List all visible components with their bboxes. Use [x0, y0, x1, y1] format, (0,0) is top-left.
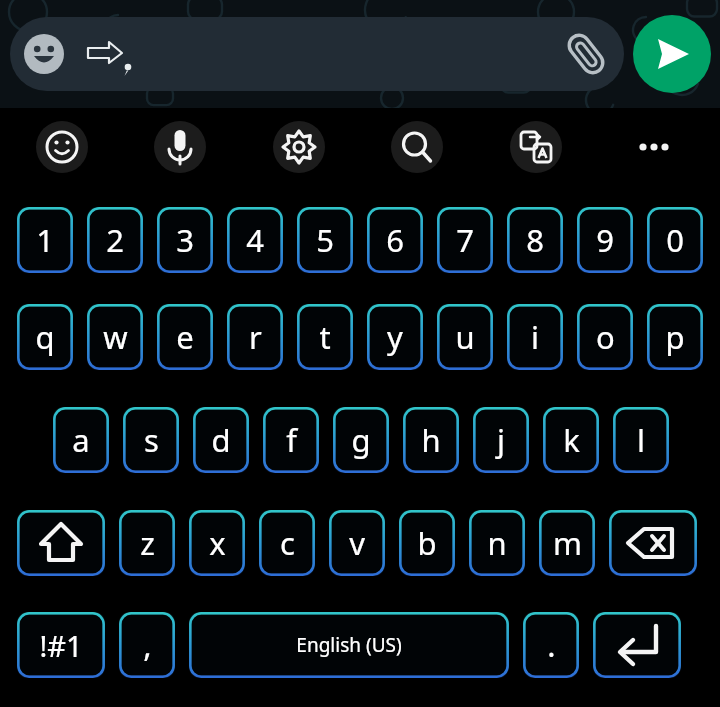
staticText: 7 — [456, 219, 474, 261]
staticText: 4 — [246, 219, 264, 261]
staticText: !#1 — [39, 626, 83, 665]
button[interactable]: Send — [633, 15, 711, 93]
button[interactable]: x — [189, 510, 245, 576]
staticText: e — [176, 316, 194, 358]
button[interactable]: Search — [391, 121, 443, 173]
staticText: English (US) — [296, 632, 402, 658]
button[interactable]: p — [647, 304, 703, 370]
staticText: c — [280, 522, 295, 564]
staticText: 9 — [596, 219, 614, 261]
staticText: 3 — [176, 219, 194, 261]
staticText: y — [387, 316, 403, 358]
staticText: z — [140, 522, 155, 564]
button[interactable]: 0 — [647, 207, 703, 273]
button[interactable]: m — [539, 510, 595, 576]
staticText: m — [553, 522, 582, 564]
button[interactable]: v — [329, 510, 385, 576]
button[interactable]: r — [227, 304, 283, 370]
staticText: v — [349, 522, 365, 564]
button[interactable]: Enter — [593, 612, 681, 678]
button[interactable]: 9 — [577, 207, 633, 273]
button[interactable]: More options — [628, 121, 680, 173]
staticText: n — [487, 522, 507, 564]
staticText: , — [143, 624, 152, 666]
button[interactable]: z — [119, 510, 175, 576]
button[interactable]: q — [17, 304, 73, 370]
button[interactable]: 2 — [87, 207, 143, 273]
button[interactable]: Attach — [562, 30, 610, 78]
staticText: l — [637, 419, 645, 461]
button[interactable]: i — [507, 304, 563, 370]
button[interactable]: 1 — [17, 207, 73, 273]
button[interactable]: g — [333, 407, 389, 473]
staticText: j — [497, 419, 505, 461]
button[interactable]: f — [263, 407, 319, 473]
button[interactable]: h — [403, 407, 459, 473]
staticText: x — [209, 522, 226, 564]
button[interactable]: s — [123, 407, 179, 473]
button[interactable]: e — [157, 304, 213, 370]
button[interactable]: k — [543, 407, 599, 473]
staticText: 0 — [666, 219, 684, 261]
button[interactable]: c — [259, 510, 315, 576]
button[interactable]: 7 — [437, 207, 493, 273]
staticText: h — [421, 419, 441, 461]
button[interactable]: 8 — [507, 207, 563, 273]
staticText: t — [319, 316, 331, 358]
button[interactable]: y — [367, 304, 423, 370]
button[interactable]: j — [473, 407, 529, 473]
button[interactable]: English (US) — [189, 612, 509, 678]
staticText: 5 — [316, 219, 334, 261]
button[interactable]: n — [469, 510, 525, 576]
staticText: p — [665, 316, 685, 358]
staticText: 1 — [36, 219, 54, 261]
staticText: a — [72, 419, 90, 461]
button[interactable]: l — [613, 407, 669, 473]
staticText: k — [563, 419, 580, 461]
button[interactable]: Translate — [510, 121, 562, 173]
button[interactable]: u — [437, 304, 493, 370]
button[interactable]: w — [87, 304, 143, 370]
staticText: r — [249, 316, 262, 358]
staticText: i — [531, 316, 539, 358]
staticText: 2 — [106, 219, 124, 261]
button[interactable]: b — [399, 510, 455, 576]
button[interactable]: , — [119, 612, 175, 678]
button[interactable]: a — [53, 407, 109, 473]
button[interactable]: 3 — [157, 207, 213, 273]
staticText: f — [286, 419, 297, 461]
button[interactable]: Voice input — [154, 121, 206, 173]
staticText: q — [35, 316, 55, 358]
button[interactable]: Settings — [273, 121, 325, 173]
button[interactable]: 4 — [227, 207, 283, 273]
button[interactable]: . — [523, 612, 579, 678]
staticText: 8 — [526, 219, 544, 261]
staticText: u — [455, 316, 475, 358]
staticText: s — [144, 419, 159, 461]
staticText: 6 — [386, 219, 404, 261]
staticText: g — [351, 419, 371, 461]
button[interactable]: t — [297, 304, 353, 370]
button[interactable]: Backspace — [609, 510, 697, 576]
staticText: . — [547, 624, 556, 666]
button[interactable]: o — [577, 304, 633, 370]
button[interactable]: Emoji — [36, 121, 88, 173]
staticText: o — [596, 316, 615, 358]
button[interactable]: 5 — [297, 207, 353, 273]
button[interactable]: Emoji — [22, 32, 66, 76]
staticText: w — [103, 316, 128, 358]
button[interactable]: !#1 — [17, 612, 105, 678]
staticText: b — [417, 522, 437, 564]
staticText: d — [211, 419, 231, 461]
button[interactable]: 6 — [367, 207, 423, 273]
button[interactable]: Shift — [17, 510, 105, 576]
button[interactable]: d — [193, 407, 249, 473]
button[interactable]: Emoji — [10, 17, 624, 91]
